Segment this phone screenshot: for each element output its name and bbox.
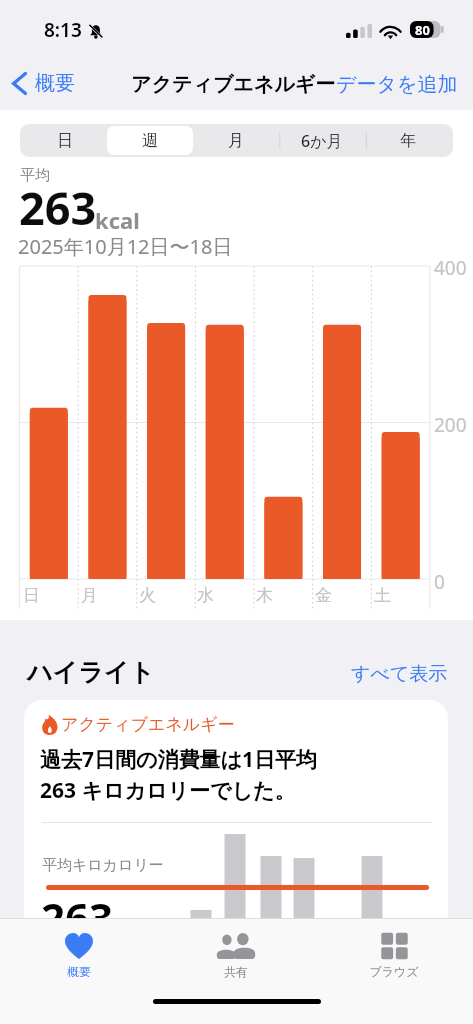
staticText: 週 (142, 131, 158, 151)
other: 共有 (216, 933, 256, 959)
button[interactable]: 月 (193, 126, 279, 155)
staticText: 月 (81, 585, 98, 606)
staticText: 月 (228, 131, 244, 151)
staticText: kcal (95, 205, 140, 235)
other: ブラウズ (381, 933, 408, 959)
staticText: ブラウズ (369, 964, 419, 979)
staticText: 概要 (35, 71, 75, 96)
staticText: 80 (415, 21, 430, 38)
staticText: 400 (434, 255, 467, 281)
staticText: 263 (19, 177, 97, 238)
staticText: 8:13 (44, 17, 82, 43)
staticText: 共有 (224, 964, 248, 979)
button[interactable]: 6か月 (279, 126, 365, 155)
staticText: 日 (57, 131, 73, 151)
button[interactable]: 年 (365, 126, 451, 155)
staticText: 概要 (67, 964, 91, 979)
button[interactable]: 概要 (0, 919, 157, 981)
staticText: 日 (23, 585, 40, 606)
other: 概要 (65, 933, 93, 959)
staticText: 水 (197, 585, 214, 606)
button[interactable]: 週 (107, 126, 193, 155)
button[interactable]: データを追加 (336, 72, 458, 97)
staticText: 年 (400, 131, 416, 151)
staticText: 火 (139, 585, 156, 606)
staticText: kcal (111, 914, 152, 941)
staticText: 過去7日間の消費量は1日平均 263 キロカロリーでした。 (40, 745, 318, 804)
staticText: 2025年10月12日〜18日 (18, 233, 233, 260)
staticText: 平均 (20, 166, 50, 185)
staticText: アクティブエネルギー (131, 72, 336, 97)
staticText: ハイライト (27, 657, 155, 688)
staticText: 土 (374, 585, 391, 606)
staticText: 200 (434, 412, 467, 438)
button[interactable]: ブラウズ (315, 919, 473, 981)
button[interactable]: 日 (22, 126, 107, 155)
staticText: 平均キロカロリー (42, 856, 164, 875)
button[interactable]: 概要 (6, 66, 79, 101)
button[interactable]: アクティブエネルギー (24, 700, 448, 1024)
button[interactable]: すべて表示 (351, 662, 448, 686)
staticText: 木 (256, 585, 273, 606)
staticText: 0 (434, 569, 445, 595)
staticText: 金 (315, 585, 332, 606)
staticText: 6か月 (301, 130, 343, 152)
staticText: アクティブエネルギー (61, 714, 235, 735)
staticText: 263 (41, 889, 114, 946)
button[interactable]: 共有 (157, 919, 315, 981)
